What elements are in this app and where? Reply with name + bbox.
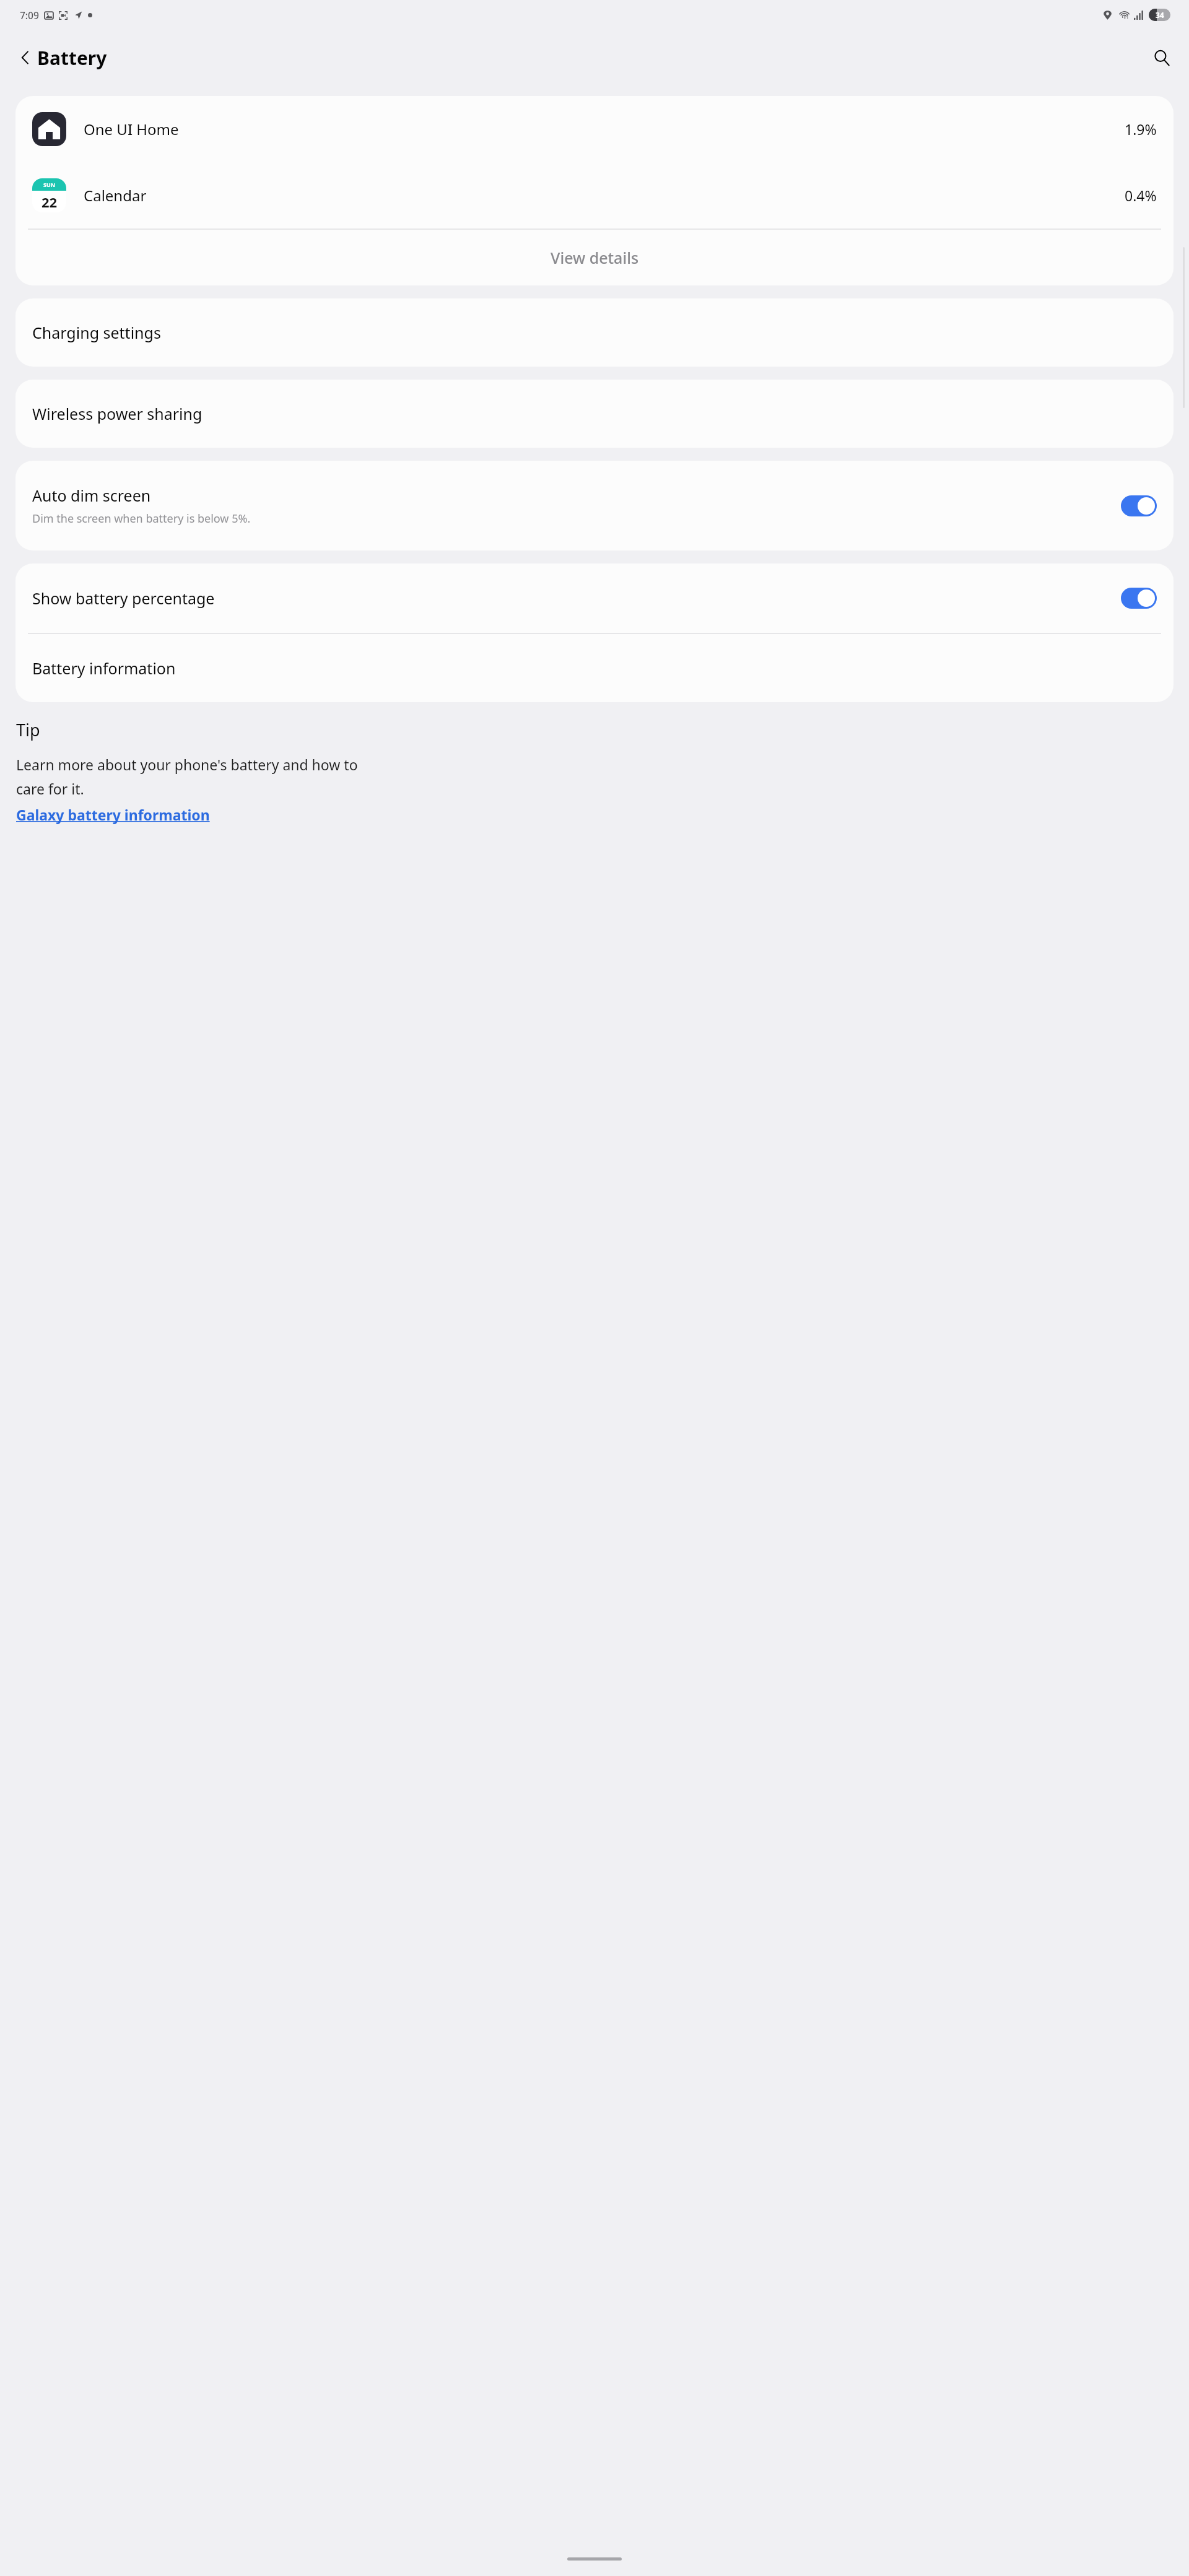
staticText: Wireless power sharing — [32, 403, 203, 424]
staticText: 22 — [41, 193, 58, 211]
staticText: Show battery percentage — [32, 588, 1121, 609]
button[interactable]: Search — [1146, 41, 1178, 74]
staticText: Charging settings — [32, 322, 161, 343]
button[interactable]: Battery information — [15, 634, 1174, 702]
button[interactable]: SUN — [15, 162, 1174, 228]
staticText: Learn more about your phone's battery an… — [16, 755, 358, 799]
button[interactable]: One UI Home — [15, 96, 1174, 162]
staticText: Tip — [16, 718, 40, 741]
staticText: Auto dim screen — [32, 485, 151, 506]
staticText: 34 — [1156, 10, 1164, 20]
staticText: SUN — [43, 181, 56, 188]
staticText: Battery — [37, 45, 107, 71]
staticText: 0.4% — [1125, 186, 1157, 205]
staticText: 1.9% — [1125, 120, 1157, 139]
button[interactable]: Toggle — [1121, 588, 1157, 609]
button[interactable]: Wireless power sharing — [15, 380, 1174, 448]
button[interactable]: Back — [10, 42, 41, 73]
button[interactable]: Galaxy battery information — [16, 805, 210, 824]
button[interactable]: Toggle — [1121, 495, 1157, 516]
staticText: One UI Home — [84, 119, 1125, 139]
staticText: Dim the screen when battery is below 5%. — [32, 511, 251, 526]
button[interactable]: View details — [15, 230, 1174, 285]
button[interactable]: Show battery percentage — [15, 563, 1174, 633]
button[interactable]: Charging settings — [15, 298, 1174, 367]
staticText: Battery information — [32, 658, 176, 679]
staticText: View details — [551, 247, 639, 268]
staticText: 7:09 — [20, 9, 39, 22]
staticText: Calendar — [84, 185, 1125, 206]
staticText: Galaxy battery information — [16, 805, 210, 824]
button[interactable]: Auto dim screen — [15, 461, 1174, 550]
